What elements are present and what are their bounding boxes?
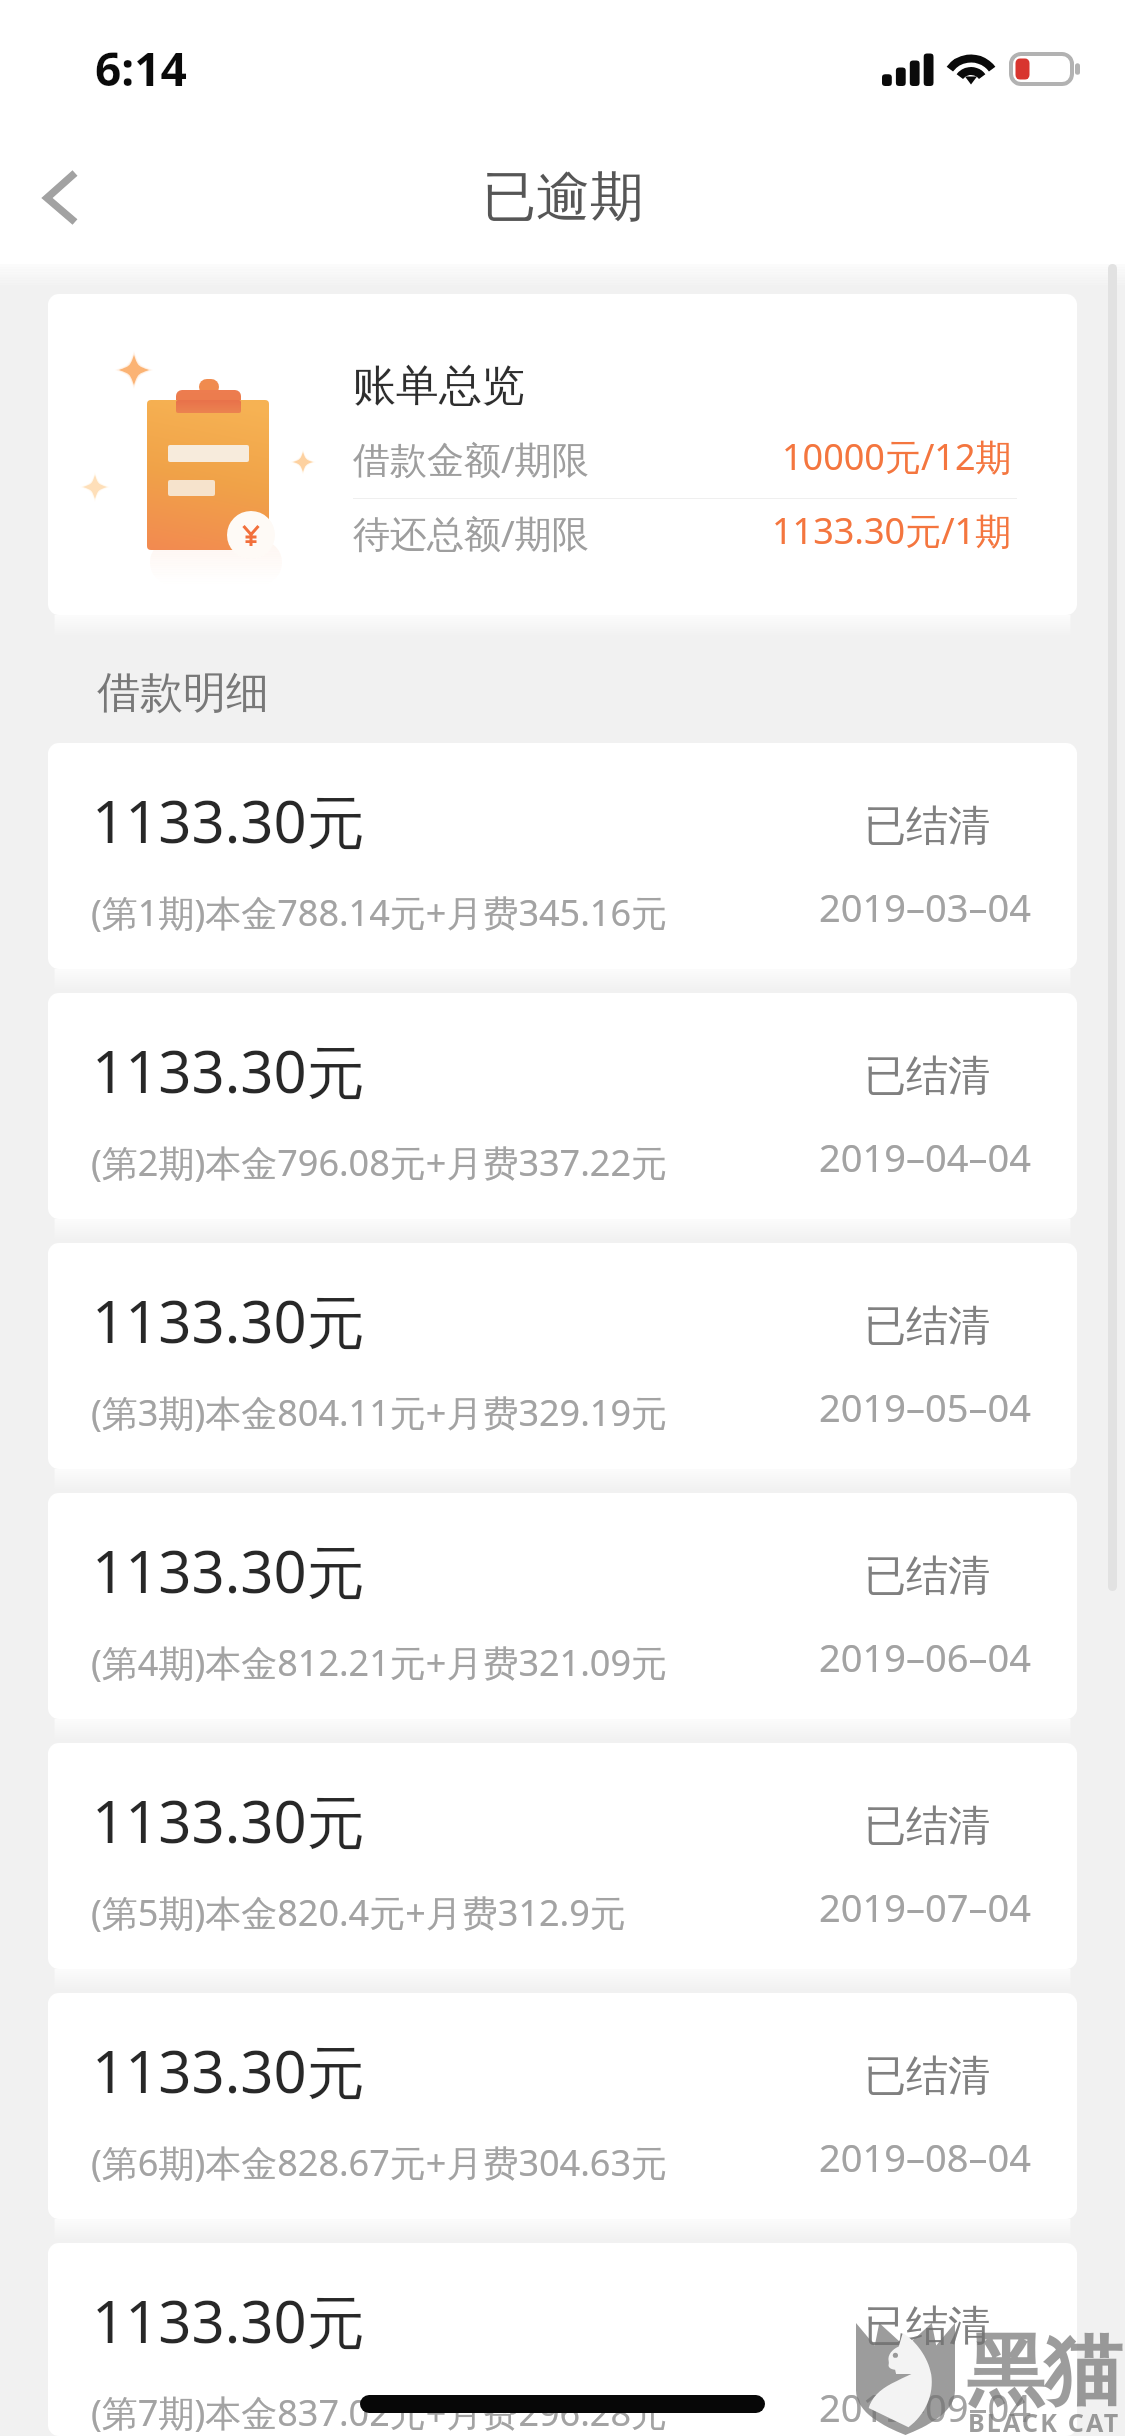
staticText: 1133.30元/1期 [772,506,1012,555]
staticText: 已结清 [864,800,990,853]
staticText: 2019–09–04 [819,2381,1031,2433]
button[interactable]: Back [0,142,120,254]
staticText: 已逾期 [482,163,644,231]
staticText: 借款明细 [97,666,269,720]
button[interactable]: 1133.30元 [48,2243,1077,2436]
staticText: (第5期)本金820.4元+月费312.9元 [91,1888,626,1937]
button[interactable]: 1133.30元 [48,1493,1077,1719]
button[interactable]: 1133.30元 [48,1743,1077,1969]
staticText: 已结清 [864,1550,990,1603]
staticText: 已结清 [864,2300,990,2353]
staticText: (第1期)本金788.14元+月费345.16元 [91,888,668,937]
staticText: 2019–04–04 [819,1131,1031,1183]
button[interactable]: 1133.30元 [48,743,1077,969]
staticText: 借款金额/期限 [353,433,589,484]
staticText: (第7期)本金837.02元+月费296.28元 [91,2388,668,2436]
staticText: 2019–08–04 [819,2131,1031,2183]
staticText: BLACK CAT [968,2405,1121,2436]
staticText: (第3期)本金804.11元+月费329.19元 [91,1388,668,1437]
staticText: 2019–03–04 [819,881,1031,933]
staticText: 已结清 [864,1800,990,1853]
staticText: 1133.30元 [92,1781,365,1860]
staticText: 1133.30元 [92,1031,365,1110]
staticText: 已结清 [864,1050,990,1103]
staticText: 2019–06–04 [819,1631,1031,1683]
staticText: 1133.30元 [92,781,365,860]
staticText: 1133.30元 [92,1281,365,1360]
button[interactable]: 账单总览 [48,294,1077,615]
staticText: 已结清 [864,2050,990,2103]
staticText: 账单总览 [353,359,525,413]
staticText: 6:14 [95,37,187,100]
staticText: 2019–07–04 [819,1881,1031,1933]
staticText: 1133.30元 [92,1531,365,1610]
staticText: 待还总额/期限 [353,507,589,558]
staticText: (第6期)本金828.67元+月费304.63元 [91,2138,668,2187]
button[interactable]: 1133.30元 [48,1243,1077,1469]
staticText: 黑猫 [966,2322,1122,2420]
button[interactable]: 1133.30元 [48,993,1077,1219]
staticText: 已结清 [864,1300,990,1353]
staticText: (第2期)本金796.08元+月费337.22元 [91,1138,668,1187]
staticText: (第4期)本金812.21元+月费321.09元 [91,1638,668,1687]
staticText: 1133.30元 [92,2031,365,2110]
staticText: 1133.30元 [92,2281,365,2360]
staticText: 10000元/12期 [782,432,1012,481]
button[interactable]: 1133.30元 [48,1993,1077,2219]
staticText: 2019–05–04 [819,1381,1031,1433]
